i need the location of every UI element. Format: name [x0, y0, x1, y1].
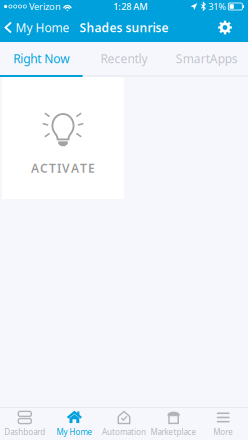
staticText: C [40, 160, 48, 176]
button[interactable]: Recently [83, 42, 165, 75]
staticText: Recently [101, 50, 148, 66]
staticText: Right Now [13, 50, 69, 66]
button[interactable]: A [2, 77, 124, 199]
staticText: My Home [56, 426, 92, 437]
button[interactable]: Right Now [0, 42, 83, 75]
staticText: Dashboard [4, 426, 45, 437]
staticText: I [57, 160, 61, 176]
button[interactable]: SmartApps [165, 42, 248, 75]
staticText: T [49, 160, 56, 176]
button[interactable]: Marketplace [149, 407, 198, 440]
staticText: Verizon [29, 0, 61, 13]
staticText: A [31, 160, 39, 176]
button[interactable]: Automation [99, 407, 149, 440]
button[interactable]: Settings [210, 13, 248, 42]
staticText: V [62, 160, 70, 176]
staticText: T [80, 160, 87, 176]
staticText: My Home [15, 19, 69, 35]
staticText: 31% [208, 0, 226, 13]
staticText: E [88, 160, 95, 176]
button[interactable]: My Home [50, 407, 99, 440]
staticText: A [71, 160, 79, 176]
staticText: Marketplace [151, 426, 197, 437]
button[interactable]: More [198, 407, 248, 440]
staticText: 1:28 AM [113, 0, 148, 13]
button[interactable]: Dashboard [0, 407, 50, 440]
staticText: More [213, 426, 233, 437]
staticText: Shades sunrise [79, 19, 168, 35]
staticText: SmartApps [176, 50, 238, 66]
staticText: Automation [102, 426, 146, 437]
button[interactable]: My Home [0, 13, 75, 42]
